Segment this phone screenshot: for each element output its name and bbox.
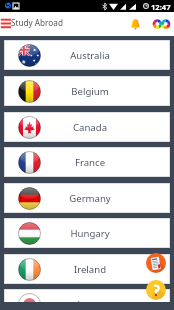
button[interactable]: Connect xyxy=(152,17,170,31)
staticText: France xyxy=(41,156,139,169)
staticText: 12:47 xyxy=(151,2,171,12)
staticText: Belgium xyxy=(41,85,139,98)
staticText: Ireland xyxy=(41,263,139,276)
staticText: Australia xyxy=(41,49,139,62)
button[interactable]: Help xyxy=(146,280,166,300)
button[interactable]: Australia xyxy=(4,40,170,70)
button[interactable]: My documents xyxy=(146,253,166,273)
staticText: Hungary xyxy=(41,227,139,240)
button[interactable]: Canada xyxy=(4,112,170,142)
button[interactable]: Ireland xyxy=(4,254,170,284)
button[interactable]: Notifications xyxy=(126,15,144,33)
button[interactable]: Japan xyxy=(4,289,170,302)
staticText: Germany xyxy=(41,192,139,205)
button[interactable]: France xyxy=(4,147,170,177)
staticText: Japan xyxy=(41,298,139,302)
button[interactable]: Open navigation menu xyxy=(0,12,13,36)
button[interactable]: Germany xyxy=(4,183,170,213)
staticText: Canada xyxy=(41,121,139,134)
button[interactable]: Belgium xyxy=(4,76,170,106)
button[interactable]: Hungary xyxy=(4,218,170,248)
staticText: Study Abroad xyxy=(11,17,63,28)
